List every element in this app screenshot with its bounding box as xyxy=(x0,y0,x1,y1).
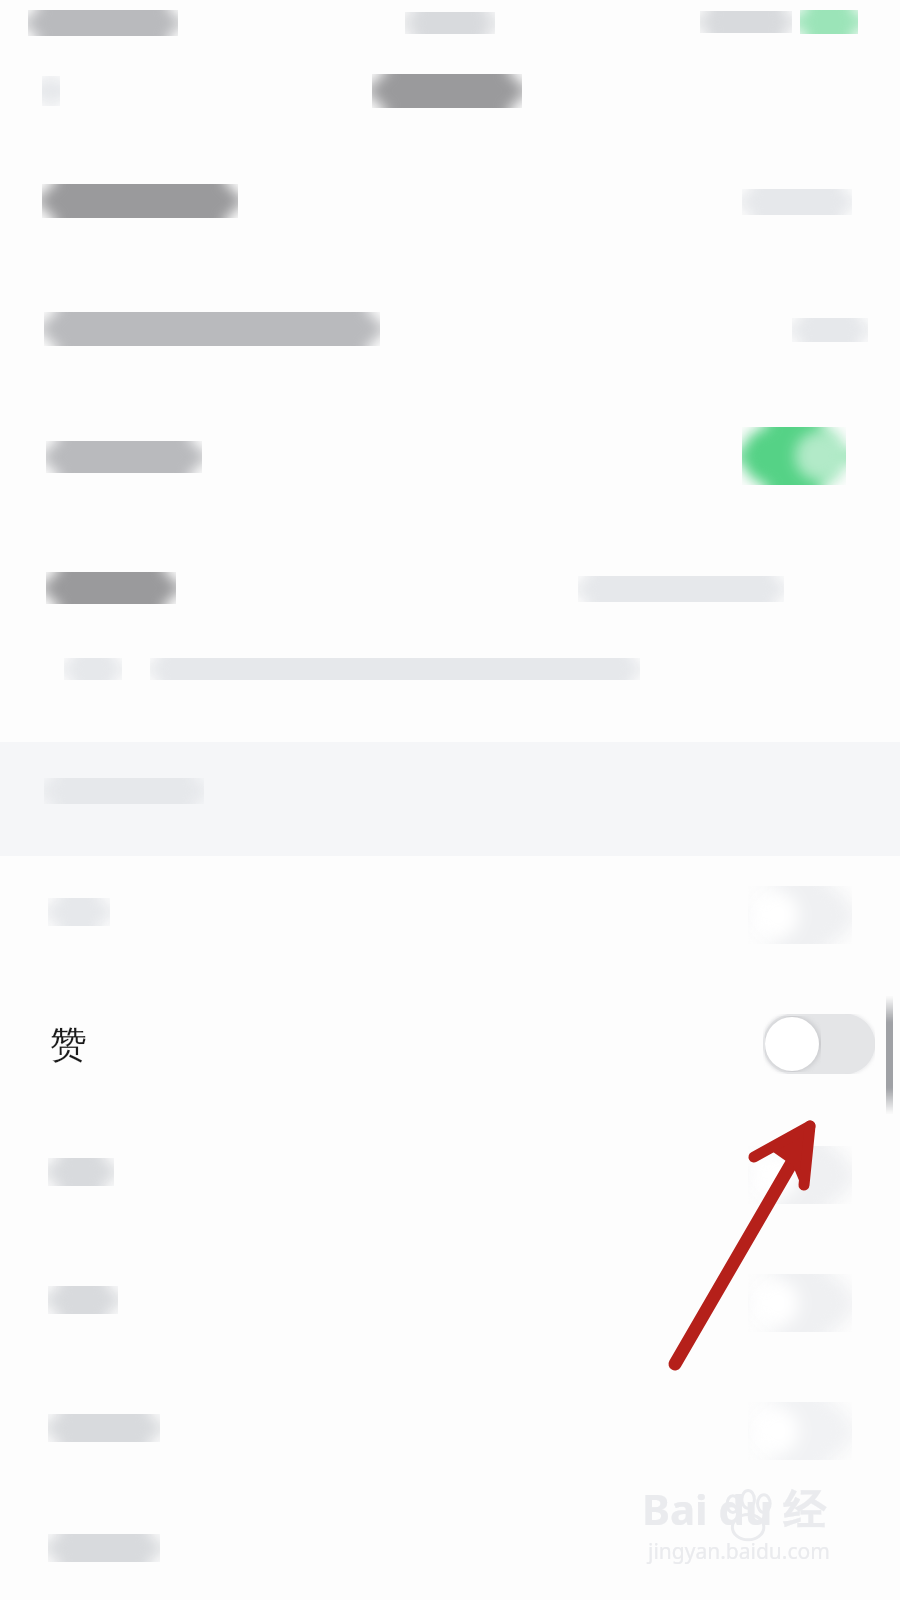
button[interactable]: 赞 xyxy=(0,982,900,1106)
other: Toggle xyxy=(748,886,852,944)
other: Toggle xyxy=(748,1274,852,1332)
staticText: jingyan.baidu.com xyxy=(648,1537,830,1566)
staticText: Bai du 经验 xyxy=(642,1480,842,1544)
other: Toggle xyxy=(748,1402,852,1460)
button[interactable] xyxy=(763,1014,875,1074)
other: Toggle, on xyxy=(742,427,846,485)
other: Toggle xyxy=(748,1146,852,1204)
staticText: 赞 xyxy=(50,1021,87,1068)
